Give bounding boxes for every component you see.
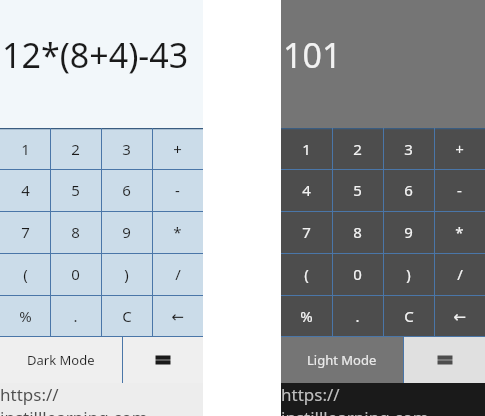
button[interactable]: 6 xyxy=(101,169,152,211)
button[interactable]: ← xyxy=(152,295,203,337)
button[interactable]: + xyxy=(434,128,485,169)
staticText: 2 xyxy=(71,139,80,159)
button[interactable]: + xyxy=(152,128,203,169)
button[interactable]: 4 xyxy=(281,169,332,211)
staticText: ← xyxy=(453,308,466,325)
staticText: 6 xyxy=(404,180,413,200)
button[interactable]: % xyxy=(0,295,50,337)
button[interactable]: 7 xyxy=(281,211,332,253)
button[interactable]: 7 xyxy=(0,211,50,253)
staticText: C xyxy=(404,306,414,326)
staticText: / xyxy=(175,264,181,284)
staticText: 5 xyxy=(353,180,362,200)
staticText: 7 xyxy=(302,222,311,242)
staticText: ← xyxy=(171,308,184,325)
button[interactable]: 8 xyxy=(50,211,101,253)
staticText: https://instilllearning.com xyxy=(0,383,203,416)
staticText: + xyxy=(455,139,464,159)
button[interactable]: Equals xyxy=(404,337,485,383)
staticText: 5 xyxy=(71,180,80,200)
button[interactable]: ( xyxy=(0,253,50,295)
staticText: 8 xyxy=(71,222,80,242)
staticText: . xyxy=(355,306,360,326)
button[interactable]: . xyxy=(332,295,383,337)
button[interactable]: 8 xyxy=(332,211,383,253)
button[interactable]: 2 xyxy=(50,128,101,169)
staticText: 0 xyxy=(353,264,362,284)
button[interactable]: Equals xyxy=(123,337,203,383)
button[interactable]: 9 xyxy=(101,211,152,253)
button[interactable]: * xyxy=(152,211,203,253)
staticText: ( xyxy=(304,264,309,284)
staticText: 3 xyxy=(122,139,131,159)
button[interactable]: - xyxy=(434,169,485,211)
staticText: Dark Mode xyxy=(27,351,95,369)
staticText: / xyxy=(457,264,463,284)
button[interactable]: 9 xyxy=(383,211,434,253)
staticText: 1 xyxy=(302,139,311,159)
button[interactable]: ) xyxy=(101,253,152,295)
staticText: 2 xyxy=(353,139,362,159)
staticText: ) xyxy=(406,264,411,284)
button[interactable]: - xyxy=(152,169,203,211)
button[interactable]: ← xyxy=(434,295,485,337)
staticText: % xyxy=(19,306,32,326)
staticText: 7 xyxy=(21,222,30,242)
staticText: 4 xyxy=(21,180,30,200)
button[interactable]: * xyxy=(434,211,485,253)
button[interactable]: 4 xyxy=(0,169,50,211)
button[interactable]: 1 xyxy=(0,128,50,169)
staticText: - xyxy=(175,180,180,200)
staticText: + xyxy=(173,139,182,159)
button[interactable]: 1 xyxy=(281,128,332,169)
staticText: . xyxy=(73,306,78,326)
button[interactable]: 5 xyxy=(332,169,383,211)
staticText: C xyxy=(122,306,132,326)
staticText: 8 xyxy=(353,222,362,242)
button[interactable]: / xyxy=(434,253,485,295)
staticText: ) xyxy=(124,264,129,284)
button[interactable]: 5 xyxy=(50,169,101,211)
staticText: 4 xyxy=(302,180,311,200)
button[interactable]: ( xyxy=(281,253,332,295)
staticText: ( xyxy=(23,264,28,284)
staticText: Light Mode xyxy=(307,351,377,369)
button[interactable]: C xyxy=(101,295,152,337)
staticText: * xyxy=(173,222,182,242)
button[interactable]: Dark Mode xyxy=(0,337,122,383)
staticText: % xyxy=(300,306,313,326)
button[interactable]: 3 xyxy=(101,128,152,169)
button[interactable]: ) xyxy=(383,253,434,295)
button[interactable]: 3 xyxy=(383,128,434,169)
staticText: 3 xyxy=(404,139,413,159)
staticText: https://instilllearning.com xyxy=(281,383,485,416)
button[interactable]: % xyxy=(281,295,332,337)
staticText: - xyxy=(457,180,462,200)
button[interactable]: 0 xyxy=(332,253,383,295)
button[interactable]: . xyxy=(50,295,101,337)
staticText: 9 xyxy=(122,222,131,242)
staticText: 6 xyxy=(122,180,131,200)
staticText: 101 xyxy=(283,32,342,78)
button[interactable]: Light Mode xyxy=(281,337,403,383)
button[interactable]: 0 xyxy=(50,253,101,295)
button[interactable]: 6 xyxy=(383,169,434,211)
button[interactable]: C xyxy=(383,295,434,337)
staticText: 9 xyxy=(404,222,413,242)
staticText: 12*(8+4)-43 xyxy=(2,32,189,78)
staticText: * xyxy=(455,222,464,242)
button[interactable]: / xyxy=(152,253,203,295)
button[interactable]: 2 xyxy=(332,128,383,169)
staticText: 0 xyxy=(71,264,80,284)
staticText: 1 xyxy=(21,139,30,159)
